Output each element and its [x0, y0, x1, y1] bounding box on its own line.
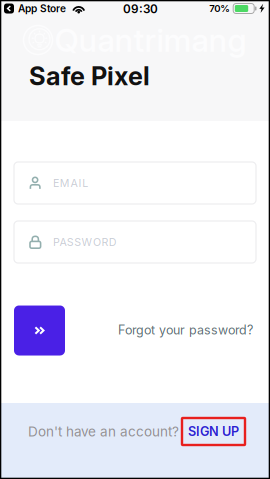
- staticText: Safe Pixel: [29, 61, 150, 91]
- staticText: SIGN UP: [188, 424, 239, 439]
- staticText: Forgot your password?: [118, 322, 253, 338]
- staticText: 70%: [209, 3, 230, 14]
- staticText: 09:30: [123, 2, 158, 16]
- staticText: EMAIL: [53, 176, 88, 189]
- button[interactable]: SIGN UP: [182, 418, 245, 445]
- button[interactable]: Sign in: [14, 305, 65, 355]
- staticText: App Store: [18, 2, 66, 15]
- staticText: PASSWORD: [53, 235, 117, 248]
- button[interactable]: Forgot your password?: [115, 316, 256, 344]
- staticText: Don't have an account?: [28, 423, 179, 440]
